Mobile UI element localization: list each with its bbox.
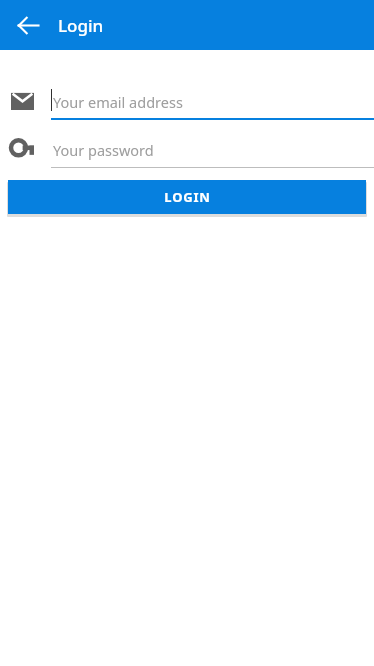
staticText: Your email address	[53, 92, 183, 112]
button[interactable]: Back	[8, 10, 48, 40]
staticText: LOGIN	[164, 188, 211, 206]
button[interactable]: Your email address	[0, 86, 374, 122]
staticText: Login	[58, 14, 104, 37]
button[interactable]: Your password	[0, 134, 374, 170]
button[interactable]: LOGIN	[8, 180, 366, 214]
staticText: Your password	[53, 140, 154, 160]
